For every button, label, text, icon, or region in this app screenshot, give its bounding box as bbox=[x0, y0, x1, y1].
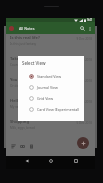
staticText: 9:41 bbox=[87, 18, 93, 22]
staticText: 8 Dec 2018 bbox=[76, 58, 92, 62]
staticText: 7 Dec 2018 bbox=[76, 79, 92, 83]
button[interactable]: You only live once bbox=[6, 76, 95, 97]
staticText: Journal View bbox=[37, 85, 58, 90]
staticText: You only live once bbox=[10, 77, 46, 83]
button[interactable]: Recents bbox=[71, 156, 80, 165]
staticText: Shopping bbox=[10, 119, 30, 125]
button[interactable]: Archive bbox=[29, 144, 34, 149]
button[interactable]: Journal View bbox=[18, 82, 84, 93]
staticText: Country roads take me bbox=[10, 63, 44, 67]
staticText: All Notes bbox=[19, 26, 35, 31]
button[interactable]: Is this real life? bbox=[6, 34, 95, 55]
button[interactable]: Take me home bbox=[6, 55, 95, 76]
button[interactable]: Home bbox=[46, 156, 55, 165]
staticText: Hello world bbox=[10, 98, 33, 104]
staticText: Milk, eggs, bread bbox=[10, 126, 35, 130]
staticText: 9 Dec 2018 bbox=[76, 37, 92, 41]
staticText: Standard View bbox=[37, 74, 62, 79]
button[interactable]: Notebook colour bbox=[9, 26, 14, 31]
button[interactable]: Sort bbox=[11, 144, 16, 149]
staticText: Card View (Experimental) bbox=[37, 107, 80, 112]
button[interactable]: More options bbox=[86, 25, 93, 32]
staticText: Is this just fantasy bbox=[10, 42, 37, 46]
button[interactable]: Shopping bbox=[6, 118, 95, 135]
button[interactable]: Hello world bbox=[6, 97, 95, 118]
button[interactable]: Back bbox=[22, 156, 31, 165]
button[interactable]: Grid View bbox=[18, 93, 84, 104]
staticText: Take me home bbox=[10, 56, 40, 62]
staticText: My very first program bbox=[10, 105, 42, 109]
button[interactable]: Search bbox=[78, 24, 86, 32]
staticText: Or do you? Nobody knows bbox=[10, 84, 49, 88]
button[interactable]: Standard View bbox=[18, 71, 84, 82]
staticText: Select View bbox=[22, 60, 46, 66]
button[interactable]: Add note bbox=[77, 137, 89, 149]
staticText: Grid View bbox=[37, 96, 54, 101]
staticText: 5 Dec 2018 bbox=[76, 121, 92, 125]
staticText: Is this real life? bbox=[10, 35, 40, 41]
button[interactable]: Card View (Experimental) bbox=[18, 104, 84, 115]
button[interactable]: Labels bbox=[20, 144, 25, 149]
staticText: 6 Dec 2018 bbox=[76, 100, 92, 104]
